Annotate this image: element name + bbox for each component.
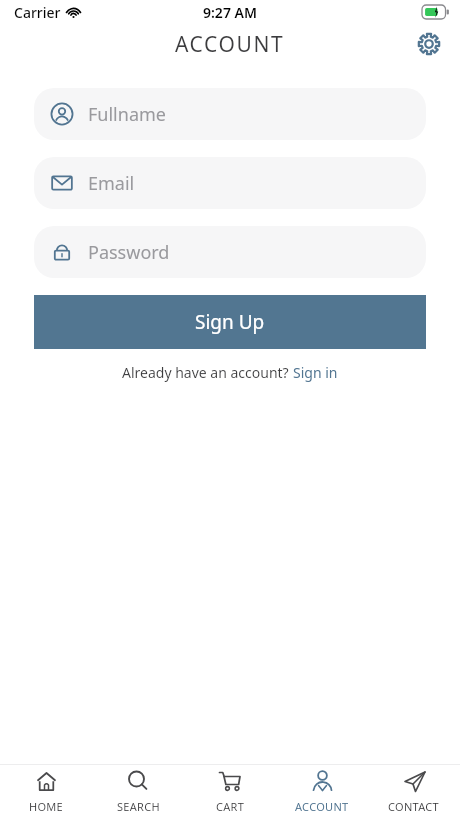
button[interactable]: Settings xyxy=(412,27,446,61)
staticText: Carrier xyxy=(14,3,61,22)
staticText: HOME xyxy=(29,799,64,814)
staticText: Email xyxy=(88,171,135,196)
staticText: ACCOUNT xyxy=(295,799,349,814)
staticText: Sign in xyxy=(293,363,338,382)
staticText: 9:27 AM xyxy=(203,3,257,22)
staticText: Already have an account? xyxy=(122,363,293,382)
button[interactable]: Sign in xyxy=(293,363,338,382)
button[interactable]: CONTACT xyxy=(368,765,460,818)
button[interactable]: SEARCH xyxy=(92,765,184,818)
staticText: Fullname xyxy=(88,102,166,127)
button[interactable]: Password xyxy=(34,226,426,278)
button[interactable]: Email xyxy=(34,157,426,209)
staticText: ACCOUNT xyxy=(175,30,285,59)
button[interactable]: Fullname xyxy=(34,88,426,140)
staticText: SEARCH xyxy=(117,799,160,814)
staticText: Password xyxy=(88,240,170,265)
staticText: Sign Up xyxy=(195,309,265,335)
button[interactable]: HOME xyxy=(0,765,92,818)
button[interactable]: ACCOUNT xyxy=(276,765,368,818)
staticText: CART xyxy=(216,799,245,814)
button[interactable]: Sign Up xyxy=(34,295,426,349)
staticText: CONTACT xyxy=(388,799,440,814)
button[interactable]: CART xyxy=(184,765,276,818)
